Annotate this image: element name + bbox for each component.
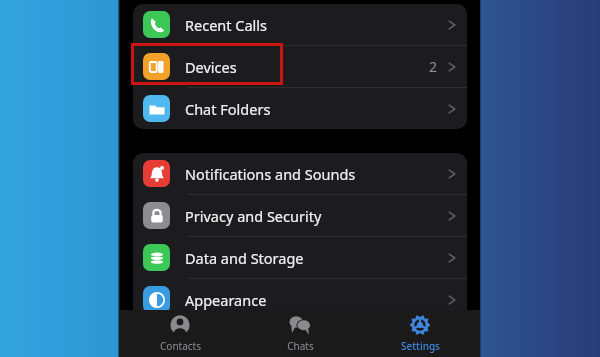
button[interactable]: Chat Folders xyxy=(133,88,467,129)
staticText: Privacy and Security xyxy=(185,206,322,226)
button[interactable]: Appearance xyxy=(133,279,467,320)
button[interactable]: Devices xyxy=(133,46,467,87)
button[interactable]: Chats xyxy=(240,310,360,357)
button[interactable]: Settings xyxy=(360,310,480,357)
button[interactable]: Recent Calls xyxy=(133,4,467,45)
staticText: Notifications and Sounds xyxy=(185,164,356,184)
staticText: 2 xyxy=(429,57,438,76)
button[interactable]: Privacy and Security xyxy=(133,195,467,236)
staticText: Chats xyxy=(287,339,314,353)
staticText: Contacts xyxy=(160,339,201,353)
button[interactable]: Data and Storage xyxy=(133,237,467,278)
staticText: Recent Calls xyxy=(185,15,268,35)
button[interactable]: Notifications and Sounds xyxy=(133,153,467,194)
button[interactable]: Contacts xyxy=(120,310,240,357)
staticText: Appearance xyxy=(185,290,267,310)
staticText: Data and Storage xyxy=(185,248,304,268)
staticText: Settings xyxy=(401,339,440,353)
staticText: Chat Folders xyxy=(185,99,271,119)
staticText: Devices xyxy=(185,57,237,77)
